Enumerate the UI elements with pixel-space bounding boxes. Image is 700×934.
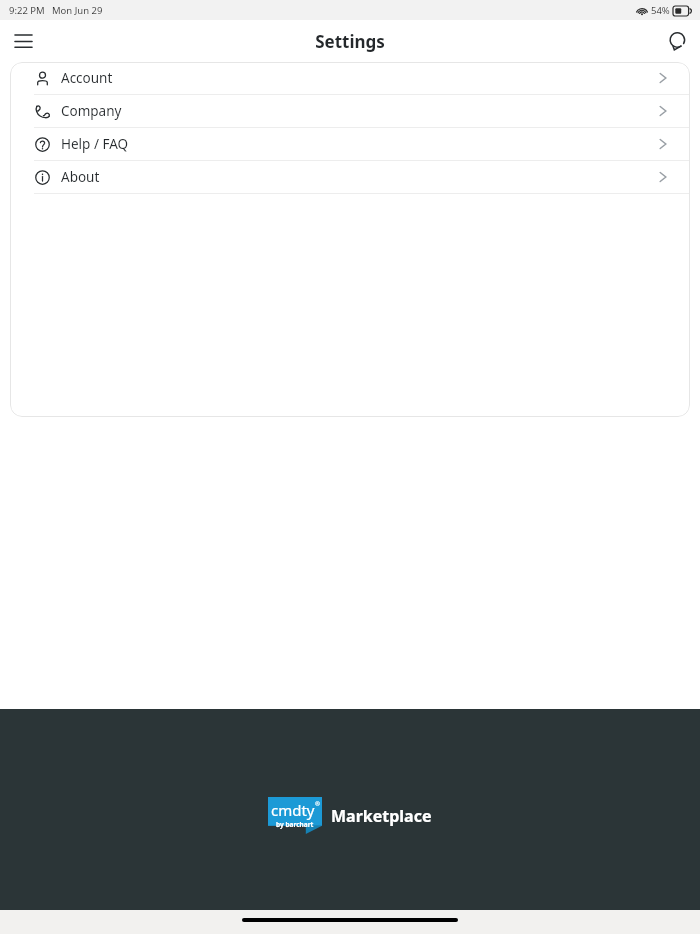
button[interactable]: Account — [10, 62, 690, 95]
staticText: cmdty — [271, 800, 315, 820]
staticText: Company — [61, 102, 122, 120]
staticText: Mon Jun 29 — [52, 4, 103, 17]
staticText: 9:22 PM — [9, 4, 45, 17]
staticText: Settings — [315, 30, 385, 53]
staticText: Marketplace — [331, 805, 432, 827]
staticText: About — [61, 168, 100, 186]
staticText: by barchart — [276, 820, 314, 829]
button[interactable]: Company — [10, 95, 690, 128]
staticText: Account — [61, 69, 113, 87]
button[interactable]: About — [10, 161, 690, 194]
staticText: ® — [315, 800, 320, 808]
staticText: Help / FAQ — [61, 135, 129, 153]
staticText: 54% — [651, 4, 670, 17]
button[interactable]: Help / FAQ — [10, 128, 690, 161]
button[interactable]: Menu — [6, 24, 40, 58]
button[interactable]: Chat — [660, 24, 694, 58]
